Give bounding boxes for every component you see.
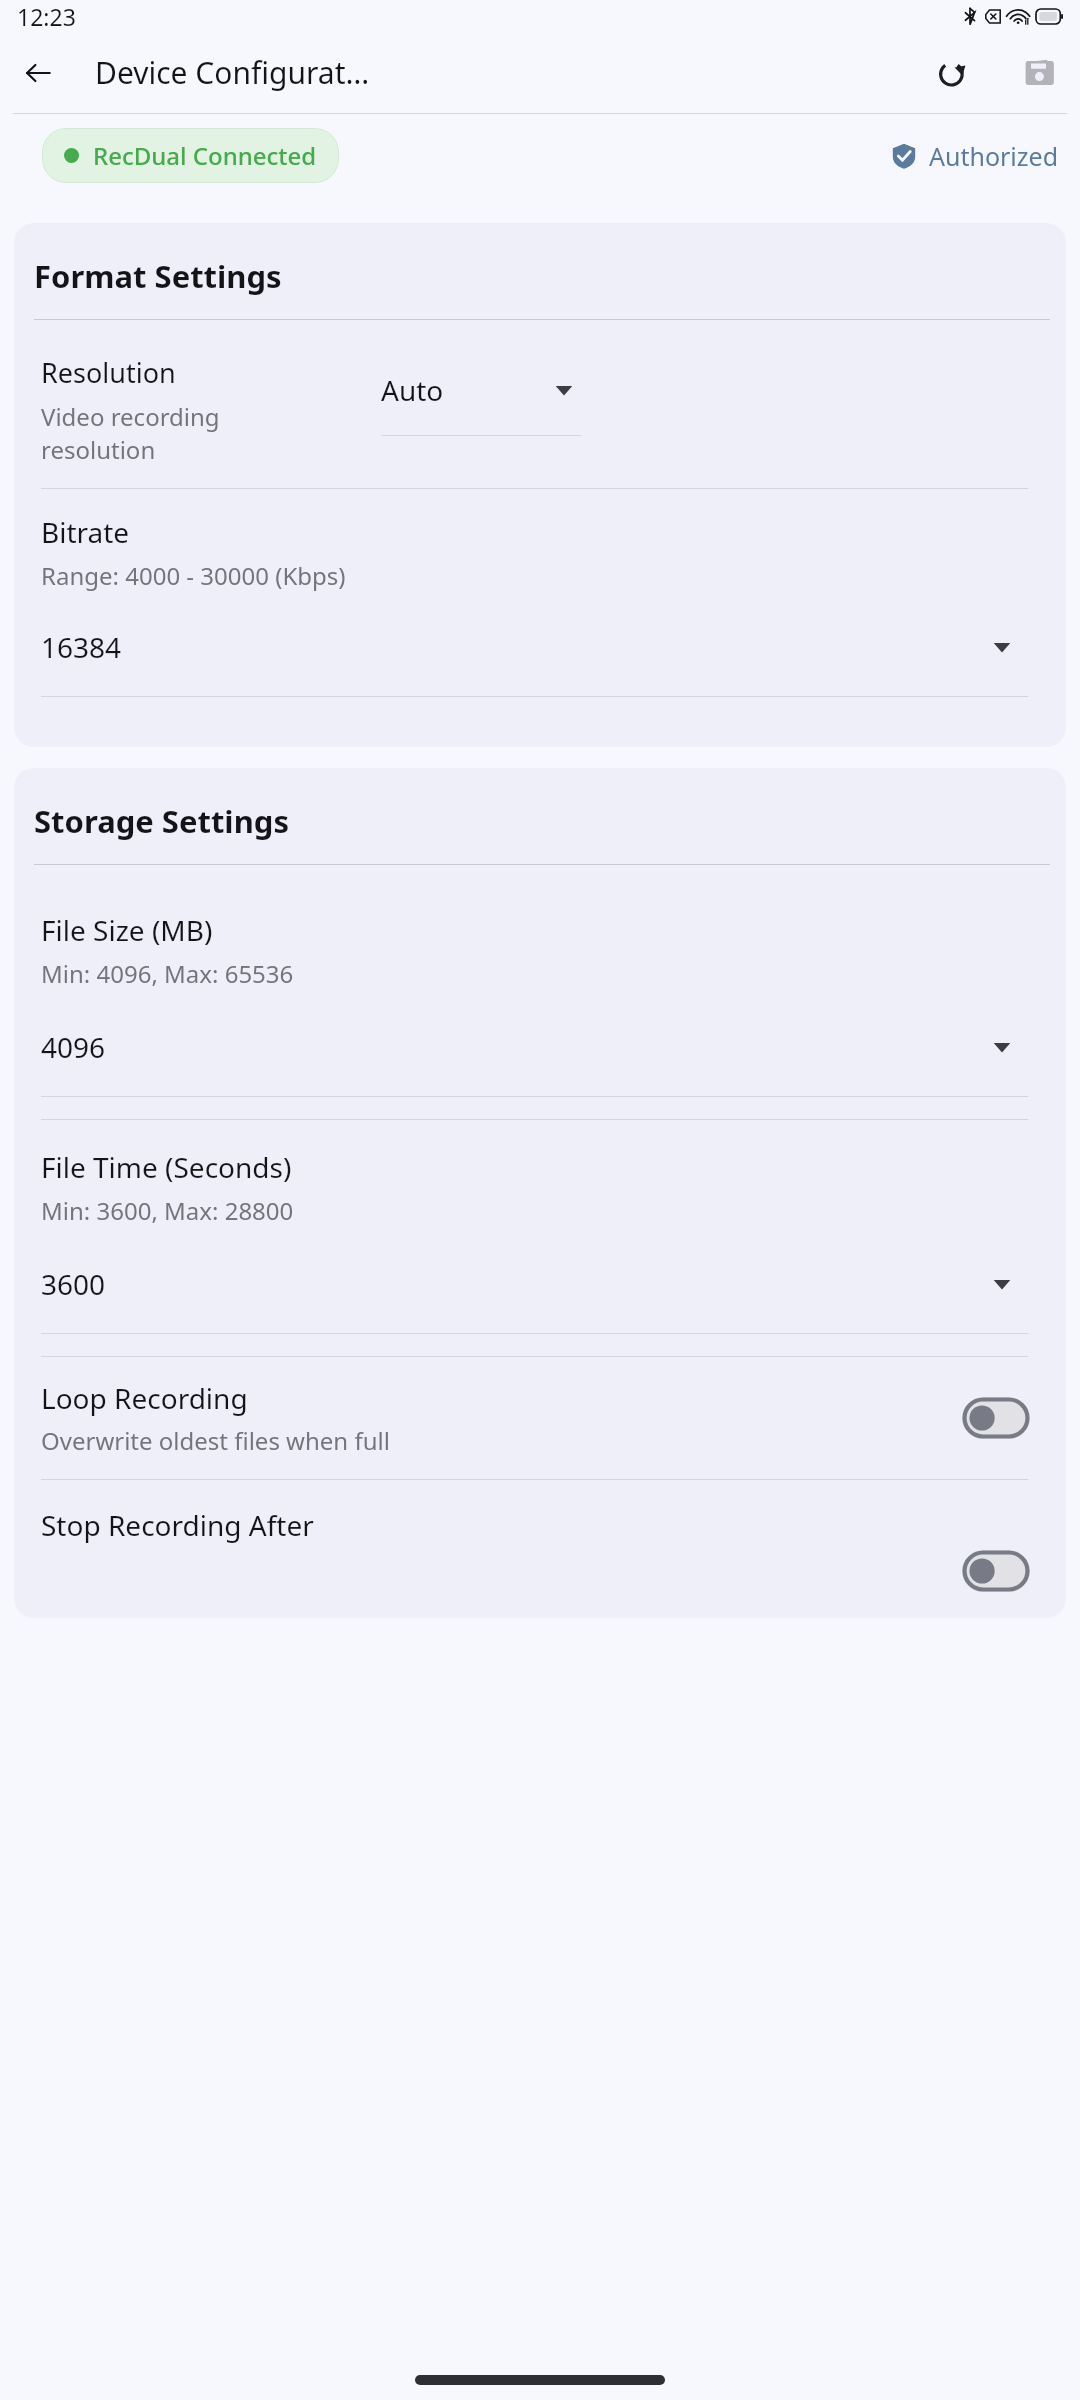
button[interactable]: 3600	[14, 1265, 1066, 1334]
staticText: Min: 4096, Max: 65536	[41, 957, 294, 990]
staticText: Stop Recording After	[41, 1506, 314, 1544]
staticText: 3600	[41, 1265, 106, 1303]
staticText: Min: 3600, Max: 28800	[41, 1194, 294, 1227]
staticText: resolution	[41, 433, 156, 466]
staticText: Device Configurat…	[95, 52, 370, 93]
staticText: Auto	[381, 371, 444, 409]
staticText: Bitrate	[41, 513, 130, 551]
button[interactable]: Back	[10, 45, 66, 101]
button[interactable]: Toggle	[962, 1550, 1030, 1592]
button[interactable]: Loop Recording	[14, 1379, 1066, 1457]
button[interactable]: Save	[1012, 45, 1068, 101]
staticText: Authorized	[929, 139, 1059, 173]
staticText: RecDual Connected	[93, 139, 317, 172]
staticText: File Time (Seconds)	[41, 1148, 292, 1186]
button[interactable]: Auto	[381, 354, 581, 436]
staticText: 4096	[41, 1028, 106, 1066]
staticText: Storage Settings	[34, 800, 289, 842]
staticText: Resolution	[41, 354, 176, 391]
staticText: 16384	[41, 628, 122, 666]
button[interactable]: Authorized	[887, 135, 1063, 177]
button[interactable]: 16384	[14, 628, 1066, 697]
staticText: File Size (MB)	[41, 911, 213, 949]
staticText: Video recording	[41, 400, 220, 433]
staticText: 12:23	[17, 1, 76, 32]
button[interactable]: RecDual Connected	[42, 128, 339, 183]
staticText: Range: 4000 - 30000 (Kbps)	[41, 559, 346, 592]
button[interactable]: 4096	[14, 1028, 1066, 1097]
button[interactable]: Toggle	[962, 1397, 1030, 1439]
staticText: Loop Recording	[41, 1379, 248, 1417]
staticText: Overwrite oldest files when full	[41, 1424, 390, 1457]
button[interactable]: Refresh	[924, 45, 980, 101]
staticText: Format Settings	[34, 255, 282, 297]
